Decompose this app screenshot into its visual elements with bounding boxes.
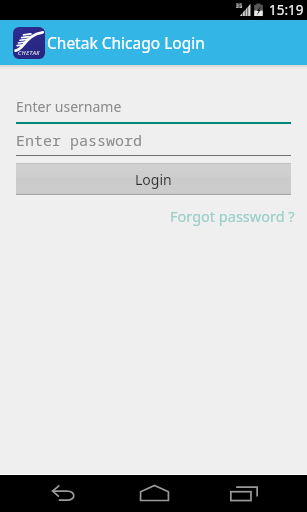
staticText: CHETAK — [18, 49, 41, 56]
button[interactable]: Enter username — [16, 97, 291, 124]
staticText: Login — [135, 170, 172, 189]
button[interactable]: Enter password — [16, 130, 291, 156]
staticText: Chetak Chicago Login — [47, 32, 205, 53]
button[interactable]: Login — [16, 163, 291, 195]
staticText: 15:19 — [269, 1, 304, 19]
button[interactable]: Home — [129, 474, 179, 512]
button[interactable]: Back — [38, 474, 88, 512]
staticText: Enter password — [16, 130, 143, 150]
button[interactable]: Forgot password ? — [170, 206, 307, 226]
staticText: Enter username — [16, 97, 122, 116]
button[interactable]: Recent apps — [219, 474, 269, 512]
